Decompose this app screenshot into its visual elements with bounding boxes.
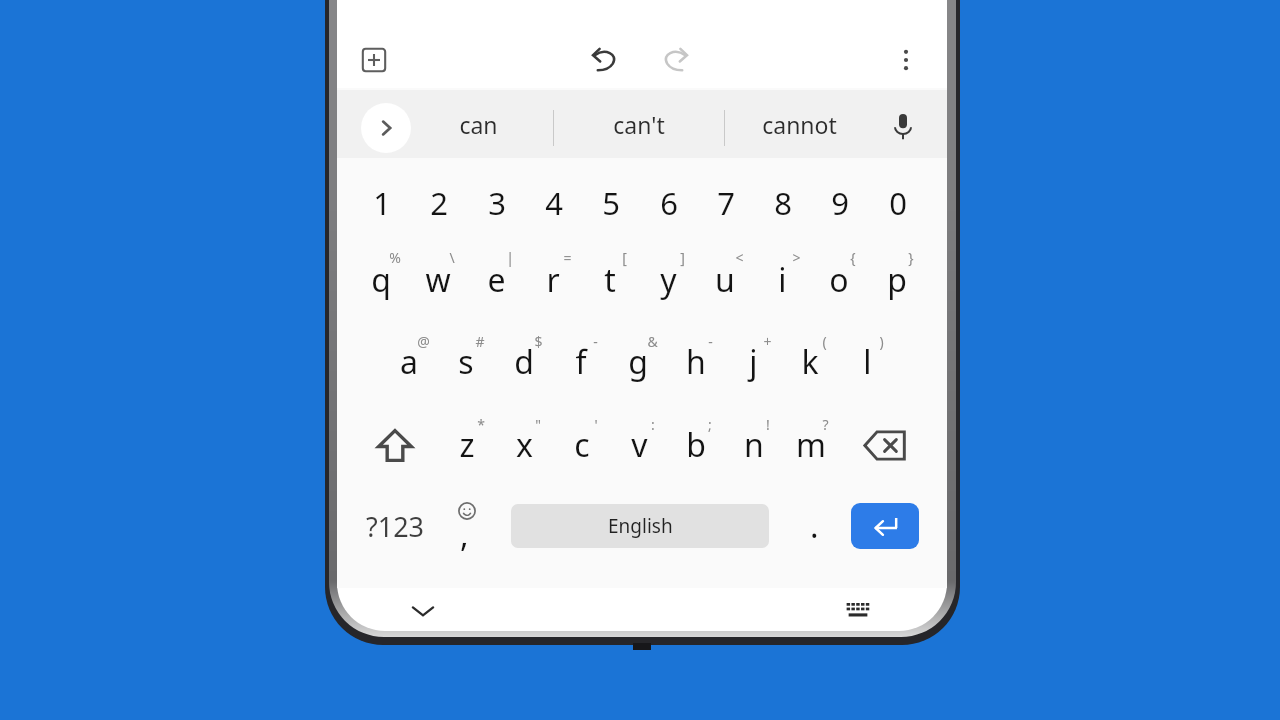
staticText: z: [459, 423, 475, 467]
button[interactable]: x: [496, 419, 552, 471]
staticText: m: [796, 423, 826, 467]
button[interactable]: m: [783, 419, 839, 471]
button[interactable]: c: [554, 419, 610, 471]
staticText: y: [660, 258, 677, 302]
staticText: .: [810, 504, 819, 548]
button[interactable]: d: [496, 336, 552, 388]
button[interactable]: ]: [654, 231, 710, 283]
staticText: }: [908, 248, 914, 267]
button[interactable]: Enter: [851, 503, 919, 549]
button[interactable]: #: [452, 315, 508, 367]
button[interactable]: z: [439, 419, 495, 471]
button[interactable]: ;: [682, 398, 738, 450]
button[interactable]: 7: [698, 177, 754, 229]
button[interactable]: +: [739, 315, 795, 367]
button[interactable]: -: [682, 315, 738, 367]
button[interactable]: 2: [411, 177, 467, 229]
button[interactable]: y: [640, 254, 696, 306]
button[interactable]: f: [553, 336, 609, 388]
button[interactable]: \: [424, 231, 480, 283]
staticText: i: [778, 258, 787, 302]
button[interactable]: Add toolbar item: [348, 34, 400, 86]
button[interactable]: p: [869, 254, 925, 306]
button[interactable]: @: [395, 315, 451, 367]
button[interactable]: 1: [354, 177, 410, 229]
button[interactable]: English: [511, 504, 769, 548]
button[interactable]: 4: [526, 177, 582, 229]
button[interactable]: Shift: [360, 410, 430, 480]
button[interactable]: }: [883, 231, 939, 283]
button[interactable]: a: [381, 336, 437, 388]
staticText: ;: [708, 415, 712, 434]
button[interactable]: h: [668, 336, 724, 388]
button[interactable]: Redo: [649, 34, 701, 86]
button[interactable]: ': [568, 398, 624, 450]
staticText: |: [506, 248, 514, 267]
button[interactable]: -: [567, 315, 623, 367]
button[interactable]: o: [811, 254, 867, 306]
button[interactable]: <: [711, 231, 767, 283]
button[interactable]: b: [668, 419, 724, 471]
button[interactable]: 8: [755, 177, 811, 229]
staticText: ': [594, 415, 598, 434]
button[interactable]: Expand toolbar: [361, 103, 411, 153]
button[interactable]: ): [853, 315, 909, 367]
staticText: cannot: [762, 109, 837, 140]
staticText: k: [801, 340, 819, 384]
button[interactable]: (: [796, 315, 852, 367]
staticText: p: [887, 258, 907, 302]
button[interactable]: 5: [583, 177, 639, 229]
button[interactable]: $: [510, 315, 566, 367]
button[interactable]: Voice input: [878, 102, 928, 152]
button[interactable]: !: [740, 398, 796, 450]
button[interactable]: can't: [567, 92, 711, 156]
button[interactable]: Emoji and comma: [443, 496, 499, 558]
button[interactable]: n: [726, 419, 782, 471]
button[interactable]: .: [789, 498, 839, 554]
button[interactable]: %: [367, 231, 423, 283]
staticText: a: [400, 340, 418, 384]
button[interactable]: ?123: [347, 497, 443, 555]
button[interactable]: 9: [812, 177, 868, 229]
button[interactable]: q: [353, 254, 409, 306]
staticText: !: [766, 415, 770, 434]
button[interactable]: w: [410, 254, 466, 306]
staticText: 8: [774, 182, 792, 224]
button[interactable]: s: [438, 336, 494, 388]
button[interactable]: cannot: [727, 92, 871, 156]
button[interactable]: >: [768, 231, 824, 283]
button[interactable]: e: [468, 254, 524, 306]
button[interactable]: u: [697, 254, 753, 306]
button[interactable]: v: [611, 419, 667, 471]
button[interactable]: Undo: [579, 34, 631, 86]
button[interactable]: k: [782, 336, 838, 388]
button[interactable]: &: [624, 315, 680, 367]
button[interactable]: l: [839, 336, 895, 388]
button[interactable]: Backspace: [850, 410, 920, 480]
button[interactable]: 0: [870, 177, 926, 229]
button[interactable]: Hide keyboard: [399, 587, 447, 635]
button[interactable]: j: [725, 336, 781, 388]
button[interactable]: 6: [641, 177, 697, 229]
staticText: -: [708, 332, 713, 351]
button[interactable]: :: [625, 398, 681, 450]
button[interactable]: |: [482, 231, 538, 283]
button[interactable]: More options: [880, 34, 932, 86]
staticText: 6: [660, 182, 678, 224]
button[interactable]: {: [825, 231, 881, 283]
button[interactable]: [: [596, 231, 652, 283]
button[interactable]: *: [453, 398, 509, 450]
button[interactable]: t: [582, 254, 638, 306]
button[interactable]: ": [510, 398, 566, 450]
staticText: w: [425, 258, 451, 302]
button[interactable]: ?: [797, 398, 853, 450]
button[interactable]: 3: [469, 177, 525, 229]
button[interactable]: i: [754, 254, 810, 306]
button[interactable]: r: [525, 254, 581, 306]
staticText: 0: [889, 182, 907, 224]
button[interactable]: can: [406, 92, 550, 156]
staticText: >: [792, 248, 801, 267]
button[interactable]: g: [610, 336, 666, 388]
button[interactable]: =: [539, 231, 595, 283]
button[interactable]: Keyboard switcher: [834, 587, 882, 635]
